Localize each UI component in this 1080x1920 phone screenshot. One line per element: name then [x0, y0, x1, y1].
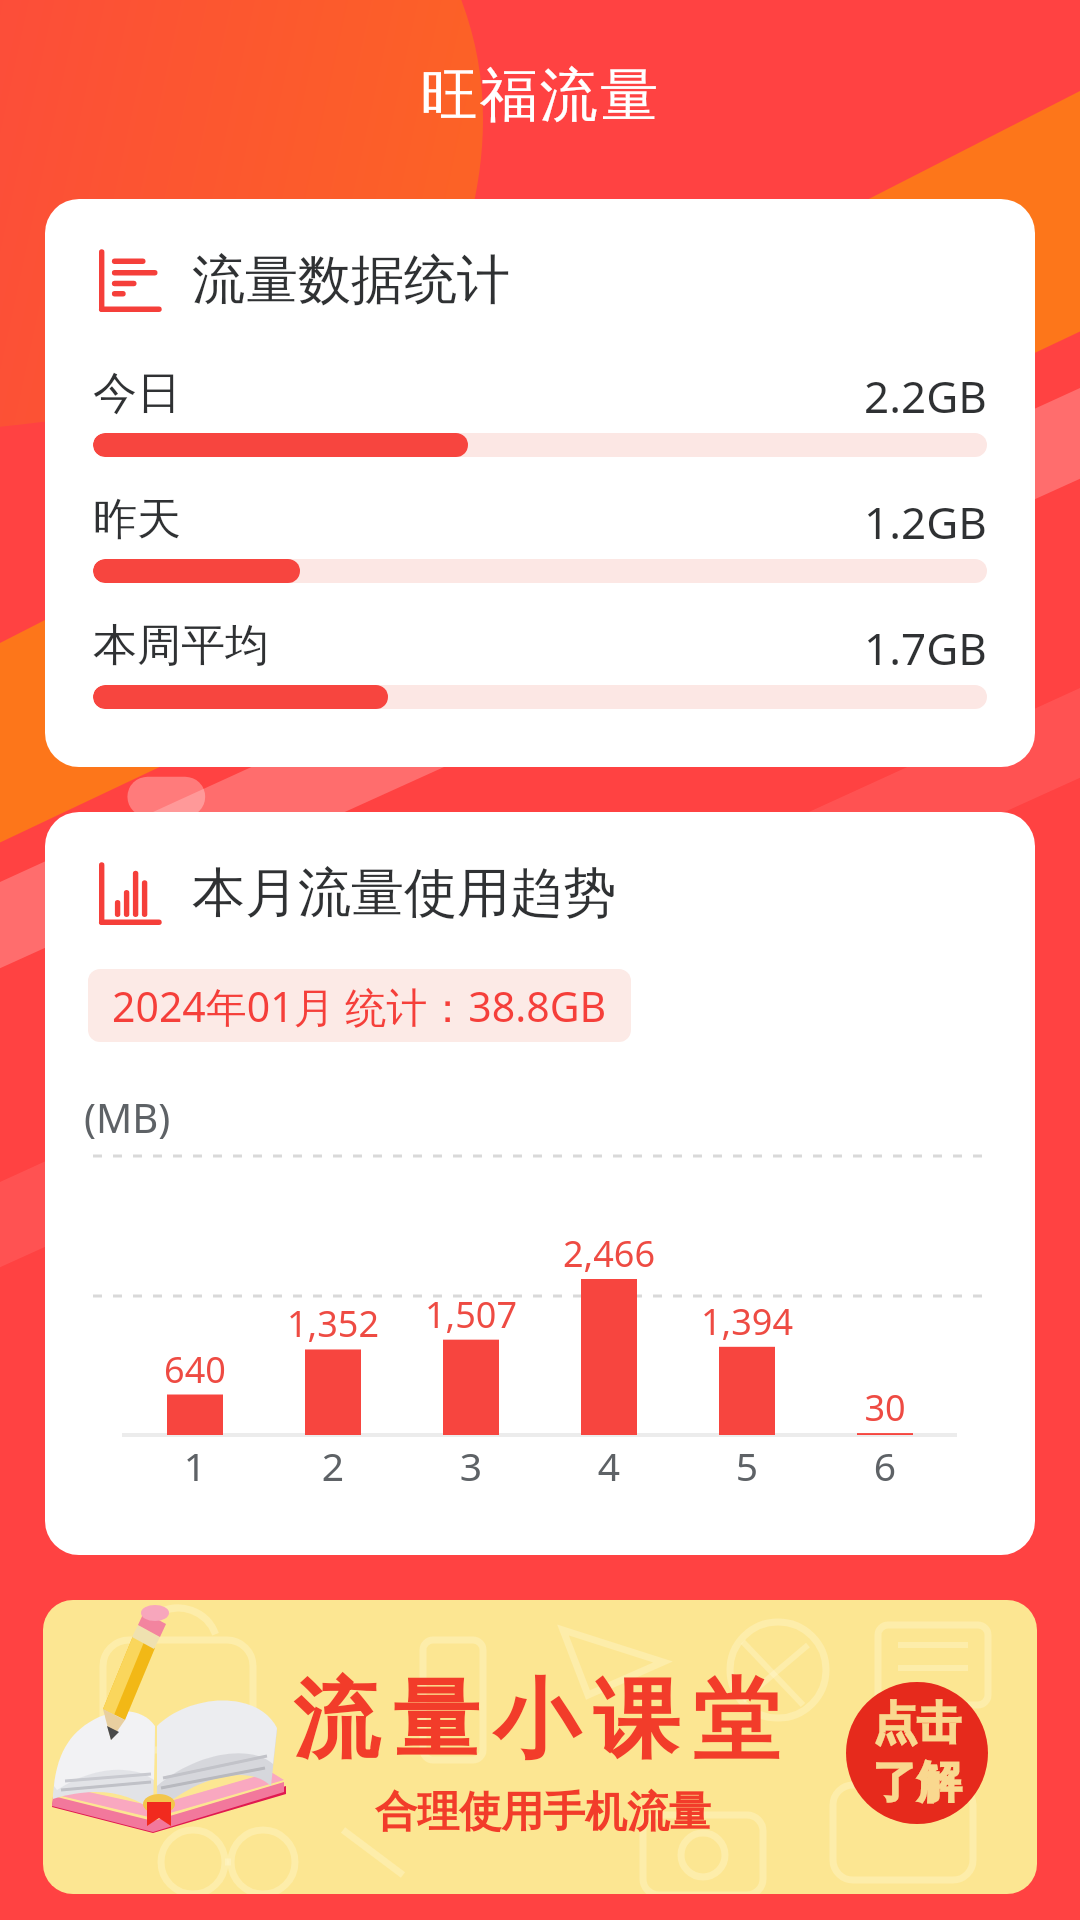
- staticText: 本周平均: [93, 618, 269, 673]
- staticText: 流量数据统计: [192, 247, 510, 314]
- button[interactable]: 本周平均: [45, 618, 1035, 710]
- staticText: (MB): [84, 1090, 171, 1144]
- button[interactable]: 昨天: [45, 492, 1035, 584]
- staticText: 1: [135, 1439, 255, 1492]
- staticText: 4: [549, 1439, 669, 1492]
- staticText: 2024年01月 统计：38.8GB: [112, 978, 607, 1034]
- staticText: 流量小课堂: [286, 1666, 786, 1774]
- button[interactable]: 点击: [846, 1682, 988, 1824]
- button[interactable]: 流量小课堂: [43, 1600, 1037, 1894]
- button[interactable]: 流量数据统计: [45, 199, 1035, 767]
- staticText: 1,394: [687, 1297, 807, 1346]
- staticText: 旺福流量: [0, 59, 1080, 132]
- staticText: 1.2GB: [864, 492, 987, 552]
- staticText: 点击: [873, 1696, 961, 1751]
- staticText: 了解: [873, 1755, 961, 1810]
- staticText: 640: [135, 1345, 255, 1394]
- staticText: 合理使用手机流量: [375, 1786, 711, 1839]
- staticText: 30: [825, 1383, 945, 1432]
- staticText: 昨天: [93, 492, 181, 547]
- staticText: 今日: [93, 366, 181, 421]
- staticText: 2: [273, 1439, 393, 1492]
- staticText: 本月流量使用趋势: [192, 860, 616, 927]
- button[interactable]: 今日: [45, 366, 1035, 458]
- staticText: 3: [411, 1439, 531, 1492]
- staticText: 2.2GB: [864, 366, 987, 426]
- staticText: 6: [825, 1439, 945, 1492]
- staticText: 1.7GB: [864, 618, 987, 678]
- staticText: 1,507: [411, 1290, 531, 1339]
- staticText: 2,466: [549, 1229, 669, 1278]
- staticText: 1,352: [273, 1299, 393, 1348]
- button[interactable]: 本月流量使用趋势: [45, 812, 1035, 1555]
- staticText: 5: [687, 1439, 807, 1492]
